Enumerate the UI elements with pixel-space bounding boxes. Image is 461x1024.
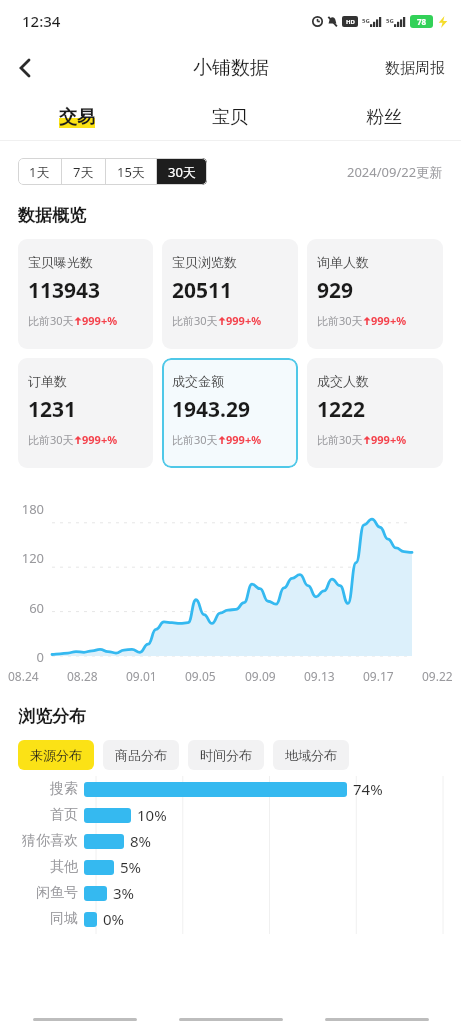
staticText: 数据周报 xyxy=(385,59,445,78)
button[interactable]: 其他 xyxy=(0,854,461,880)
staticText: 来源分布 xyxy=(30,747,82,763)
button[interactable]: 粉丝 xyxy=(307,94,461,140)
button[interactable]: 1天 xyxy=(18,158,61,185)
staticText: 999+% xyxy=(82,432,118,447)
staticText: 09.05 xyxy=(185,668,216,684)
staticText: 小铺数据 xyxy=(193,56,269,80)
staticText: 比前30天 xyxy=(317,313,363,328)
staticText: 999+% xyxy=(82,313,118,328)
staticText: 猜你喜欢 xyxy=(0,832,78,850)
staticText: 20511 xyxy=(172,276,233,305)
staticText: 180 xyxy=(0,500,44,518)
staticText: 3% xyxy=(113,883,135,903)
staticText: 1222 xyxy=(317,395,366,424)
staticText: 宝贝 xyxy=(212,106,248,129)
staticText: 7天 xyxy=(73,163,94,181)
staticText: 闲鱼号 xyxy=(0,884,78,902)
staticText: 比前30天 xyxy=(172,432,218,447)
staticText: 999+% xyxy=(226,313,262,328)
button[interactable]: 同城 xyxy=(0,906,461,932)
button[interactable]: 交易 xyxy=(0,94,153,140)
staticText: 08.28 xyxy=(67,668,98,684)
staticText: 1天 xyxy=(29,163,50,181)
staticText: 10% xyxy=(137,805,167,825)
button[interactable]: 订单数 xyxy=(18,358,153,468)
staticText: 5G xyxy=(386,17,394,25)
staticText: 09.09 xyxy=(245,668,276,684)
button[interactable]: 商品分布 xyxy=(103,740,179,770)
staticText: 同城 xyxy=(0,910,78,928)
staticText: 120 xyxy=(0,549,44,567)
staticText: 78 xyxy=(417,16,427,27)
staticText: 0% xyxy=(103,909,125,929)
staticText: 浏览分布 xyxy=(18,706,86,727)
staticText: 999+% xyxy=(371,313,407,328)
button[interactable]: 宝贝曝光数 xyxy=(18,239,153,349)
staticText: 1943.29 xyxy=(172,395,250,424)
staticText: 首页 xyxy=(0,806,78,824)
staticText: 比前30天 xyxy=(28,313,74,328)
button[interactable]: Back xyxy=(0,43,50,93)
staticText: 宝贝浏览数 xyxy=(172,254,237,270)
button[interactable]: 猜你喜欢 xyxy=(0,828,461,854)
button[interactable]: 数据周报 xyxy=(369,47,461,90)
button[interactable]: 时间分布 xyxy=(188,740,264,770)
staticText: 09.01 xyxy=(126,668,157,684)
button[interactable]: 30天 xyxy=(157,158,207,185)
staticText: 地域分布 xyxy=(285,747,337,763)
staticText: 搜索 xyxy=(0,780,78,798)
staticText: 15天 xyxy=(117,163,145,181)
staticText: 商品分布 xyxy=(115,747,167,763)
button[interactable]: 来源分布 xyxy=(18,740,94,770)
staticText: 比前30天 xyxy=(172,313,218,328)
staticText: 其他 xyxy=(0,858,78,876)
staticText: 时间分布 xyxy=(200,747,252,763)
button[interactable]: 宝贝 xyxy=(153,94,307,140)
staticText: HD xyxy=(346,18,355,26)
staticText: 2024/09/22更新 xyxy=(347,163,443,181)
staticText: 比前30天 xyxy=(28,432,74,447)
staticText: 999+% xyxy=(226,432,262,447)
staticText: 5% xyxy=(120,857,142,877)
staticText: 929 xyxy=(317,276,354,305)
button[interactable]: 搜索 xyxy=(0,776,461,802)
staticText: 60 xyxy=(0,599,44,617)
button[interactable]: 成交金额 xyxy=(162,358,298,468)
staticText: 09.17 xyxy=(363,668,394,684)
staticText: 09.13 xyxy=(304,668,335,684)
staticText: 74% xyxy=(353,779,383,799)
staticText: 询单人数 xyxy=(317,254,369,270)
staticText: 09.22 xyxy=(422,668,453,684)
staticText: 订单数 xyxy=(28,373,67,389)
staticText: 0 xyxy=(0,648,44,666)
button[interactable]: 7天 xyxy=(62,158,105,185)
staticText: 113943 xyxy=(28,276,101,305)
staticText: 12:34 xyxy=(22,11,61,31)
button[interactable]: 首页 xyxy=(0,802,461,828)
staticText: 1231 xyxy=(28,395,77,424)
staticText: 交易 xyxy=(59,106,95,129)
button[interactable]: 闲鱼号 xyxy=(0,880,461,906)
staticText: 999+% xyxy=(371,432,407,447)
button[interactable]: 宝贝浏览数 xyxy=(162,239,298,349)
staticText: 成交人数 xyxy=(317,373,369,389)
staticText: 5G xyxy=(362,17,370,25)
button[interactable]: 地域分布 xyxy=(273,740,349,770)
button[interactable]: 询单人数 xyxy=(307,239,443,349)
staticText: 数据概览 xyxy=(18,205,86,226)
staticText: 宝贝曝光数 xyxy=(28,254,93,270)
staticText: 比前30天 xyxy=(317,432,363,447)
staticText: 成交金额 xyxy=(172,373,224,389)
button[interactable]: 15天 xyxy=(106,158,156,185)
staticText: 30天 xyxy=(168,163,196,181)
button[interactable]: 成交人数 xyxy=(307,358,443,468)
staticText: 8% xyxy=(130,831,152,851)
staticText: 粉丝 xyxy=(366,106,402,129)
staticText: 08.24 xyxy=(8,668,39,684)
